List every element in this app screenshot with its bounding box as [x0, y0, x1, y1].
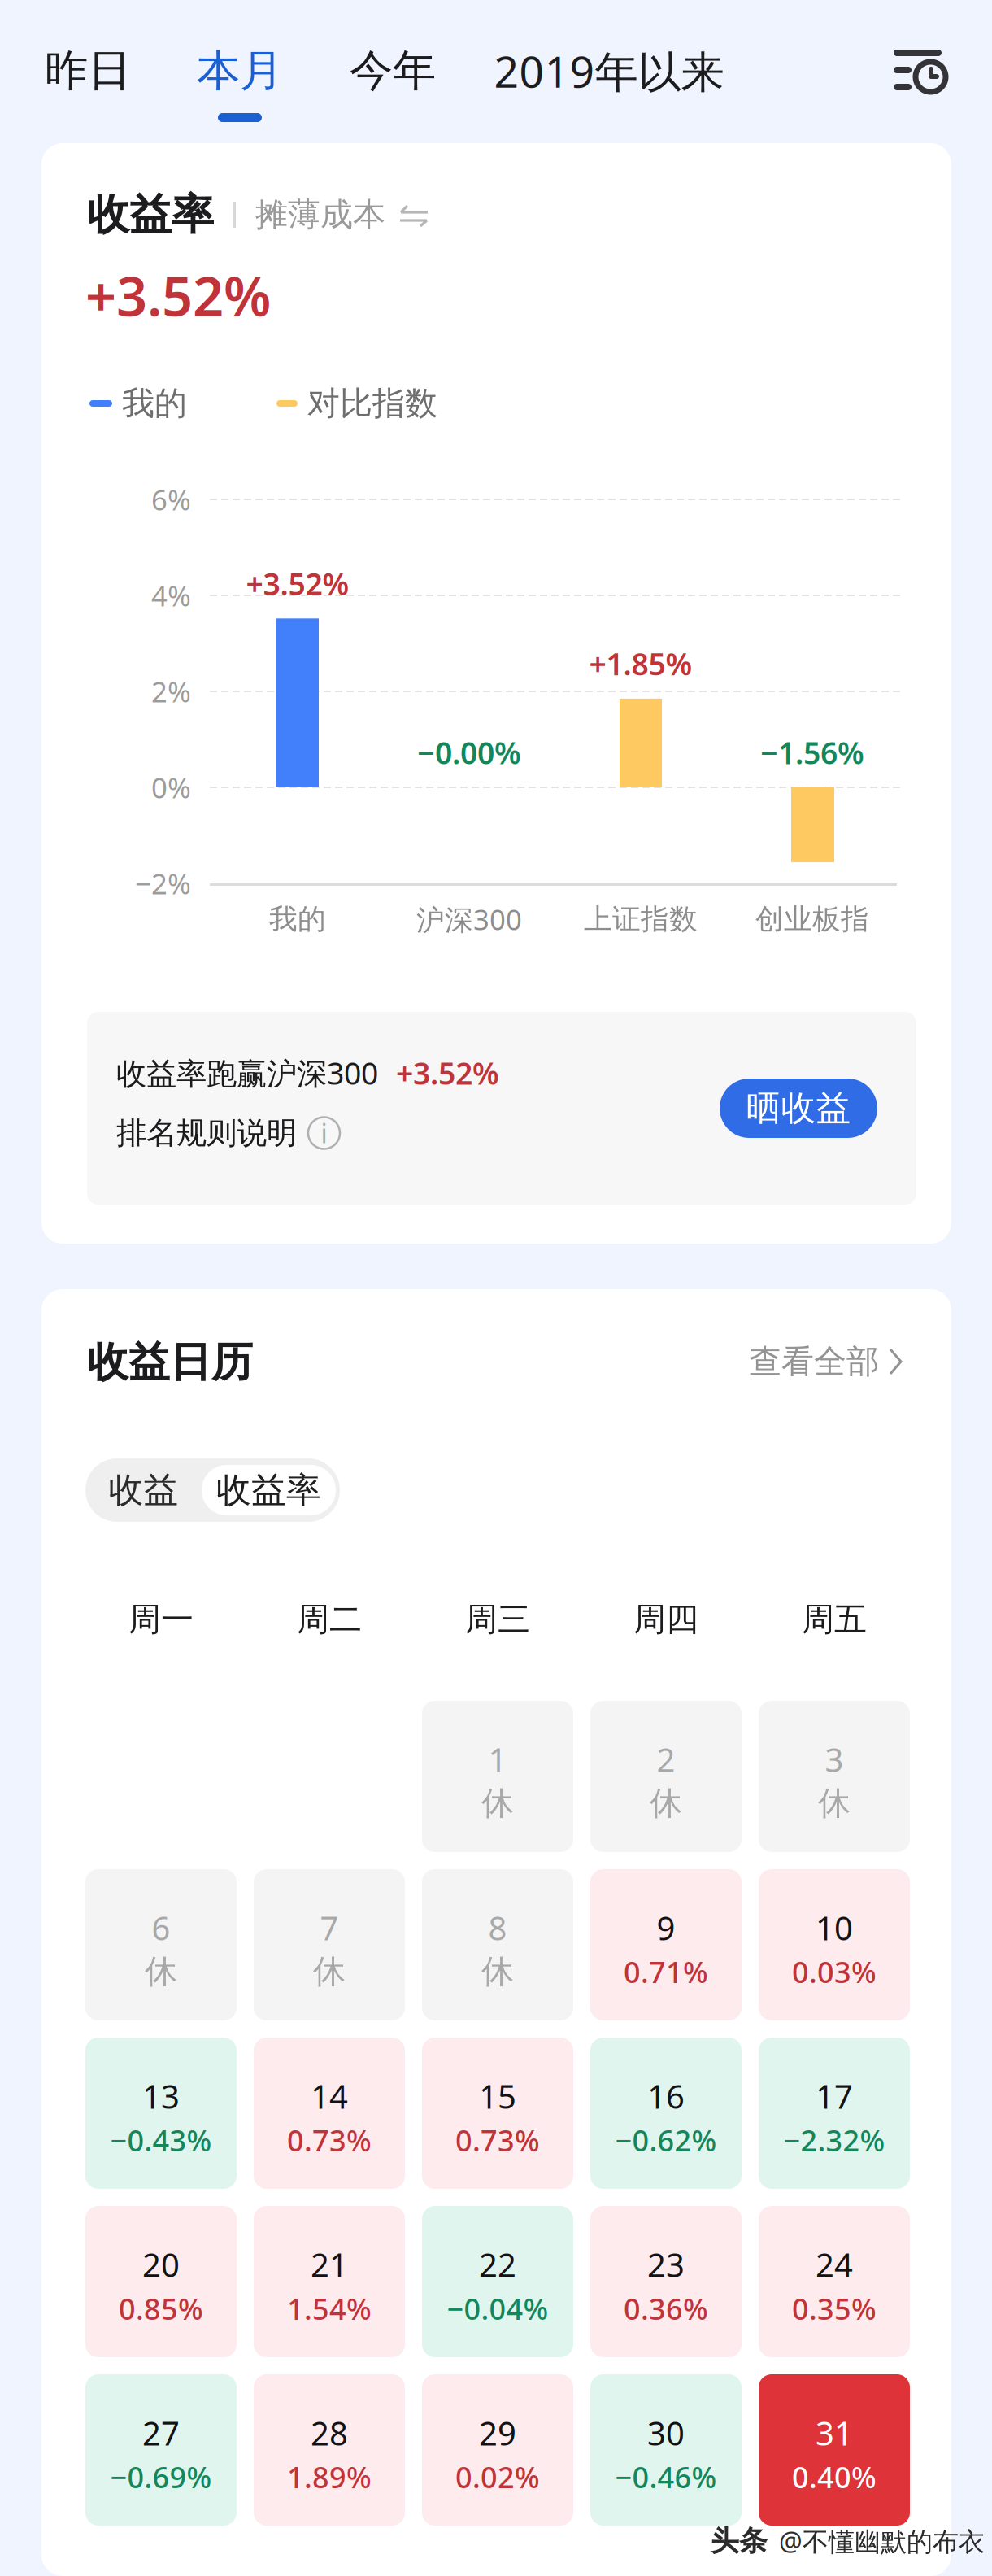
staticText: 6% — [151, 481, 191, 518]
staticText: 周一 — [128, 1599, 194, 1639]
button[interactable]: 7 — [254, 1869, 405, 2020]
button[interactable]: 收益 — [85, 1458, 202, 1522]
staticText: 我的 — [269, 902, 326, 936]
staticText: 2 — [657, 1738, 675, 1781]
button[interactable]: 16 — [590, 2038, 742, 2189]
button[interactable]: 今年 — [328, 46, 458, 127]
staticText: 30 — [647, 2411, 685, 2454]
staticText: 周五 — [802, 1599, 867, 1639]
staticText: 休 — [818, 1783, 851, 1823]
staticText: 周二 — [297, 1599, 362, 1639]
staticText: 2019年以来 — [494, 42, 724, 100]
button[interactable]: 23 — [590, 2206, 742, 2357]
staticText: 21 — [311, 2243, 348, 2286]
staticText: 8 — [488, 1906, 507, 1949]
staticText: +3.52% — [246, 563, 349, 604]
button[interactable]: 10 — [759, 1869, 910, 2020]
staticText: 收益率跑赢沪深300 — [116, 1053, 378, 1093]
button[interactable]: 21 — [254, 2206, 405, 2357]
staticText: −0.62% — [615, 2121, 717, 2159]
staticText: 我的 — [122, 383, 187, 423]
staticText: 31 — [816, 2411, 853, 2454]
staticText: +3.52% — [85, 259, 271, 331]
staticText: 0.73% — [455, 2121, 540, 2159]
button[interactable]: History — [891, 48, 951, 95]
button[interactable]: 查看全部 — [691, 1339, 903, 1384]
staticText: 2% — [151, 673, 191, 710]
staticText: 0.02% — [455, 2457, 540, 2496]
staticText: 15 — [479, 2074, 516, 2118]
staticText: 收益日历 — [87, 1337, 253, 1388]
staticText: 周四 — [633, 1599, 698, 1639]
staticText: +1.85% — [589, 643, 692, 684]
staticText: 0.71% — [624, 1952, 708, 1991]
staticText: 0.40% — [792, 2457, 877, 2496]
staticText: 创业板指 — [755, 902, 869, 936]
staticText: 收益率 — [216, 1469, 321, 1511]
button[interactable]: 3 — [759, 1701, 910, 1852]
staticText: −0.69% — [110, 2457, 212, 2496]
staticText: 1.89% — [287, 2457, 372, 2496]
staticText: 10 — [816, 1906, 853, 1949]
staticText: 收益 — [109, 1469, 178, 1511]
staticText: 0.35% — [792, 2289, 877, 2328]
staticText: 本月 — [197, 44, 283, 97]
staticText: −0.43% — [110, 2121, 212, 2159]
button[interactable]: 17 — [759, 2038, 910, 2189]
button[interactable]: 昨日 — [23, 46, 153, 127]
staticText: 9 — [657, 1906, 675, 1949]
button[interactable]: 6 — [85, 1869, 237, 2020]
staticText: 休 — [481, 1783, 514, 1823]
staticText: 7 — [320, 1906, 339, 1949]
staticText: 4% — [151, 577, 191, 614]
button[interactable]: 9 — [590, 1869, 742, 2020]
button[interactable]: 28 — [254, 2374, 405, 2526]
button[interactable]: 27 — [85, 2374, 237, 2526]
staticText: 对比指数 — [307, 383, 437, 423]
staticText: 收益率 — [87, 189, 214, 241]
staticText: 3 — [825, 1738, 844, 1781]
staticText: 排名规则说明 — [116, 1114, 297, 1152]
button[interactable]: 8 — [422, 1869, 573, 2020]
button[interactable]: 30 — [590, 2374, 742, 2526]
button[interactable]: 15 — [422, 2038, 573, 2189]
staticText: 22 — [479, 2243, 516, 2286]
button[interactable]: 22 — [422, 2206, 573, 2357]
staticText: 今年 — [350, 44, 436, 97]
staticText: −0.46% — [615, 2457, 717, 2496]
staticText: −2.32% — [783, 2121, 885, 2159]
staticText: @不懂幽默的布衣 — [779, 2524, 985, 2558]
button[interactable]: 31 — [759, 2374, 910, 2526]
staticText: 23 — [647, 2243, 685, 2286]
button[interactable]: 13 — [85, 2038, 237, 2189]
button[interactable]: 24 — [759, 2206, 910, 2357]
staticText: 头条 — [711, 2524, 768, 2558]
button[interactable]: 2 — [590, 1701, 742, 1852]
staticText: 0.73% — [287, 2121, 372, 2159]
button[interactable]: 收益率 — [202, 1465, 336, 1515]
staticText: 0.36% — [624, 2289, 708, 2328]
button[interactable]: 20 — [85, 2206, 237, 2357]
staticText: 24 — [816, 2243, 853, 2286]
staticText: 查看全部 — [749, 1342, 879, 1382]
staticText: 17 — [816, 2074, 853, 2118]
staticText: 晒收益 — [746, 1087, 851, 1130]
staticText: −0.00% — [417, 732, 521, 773]
button[interactable]: 本月 — [171, 46, 309, 127]
staticText: 1 — [488, 1738, 507, 1781]
staticText: 休 — [145, 1952, 177, 1992]
staticText: 休 — [481, 1952, 514, 1992]
button[interactable]: 14 — [254, 2038, 405, 2189]
button[interactable]: 1 — [422, 1701, 573, 1852]
staticText: 休 — [313, 1952, 346, 1992]
staticText: 0.85% — [119, 2289, 203, 2328]
staticText: 0% — [151, 769, 191, 806]
staticText: 16 — [647, 2074, 685, 2118]
button[interactable]: 晒收益 — [720, 1079, 877, 1138]
button[interactable]: 2019年以来 — [475, 46, 743, 127]
staticText: 13 — [142, 2074, 180, 2118]
button[interactable]: 29 — [422, 2374, 573, 2526]
staticText: +3.52% — [396, 1053, 499, 1093]
staticText: −1.56% — [760, 732, 864, 773]
staticText: 休 — [650, 1783, 682, 1823]
